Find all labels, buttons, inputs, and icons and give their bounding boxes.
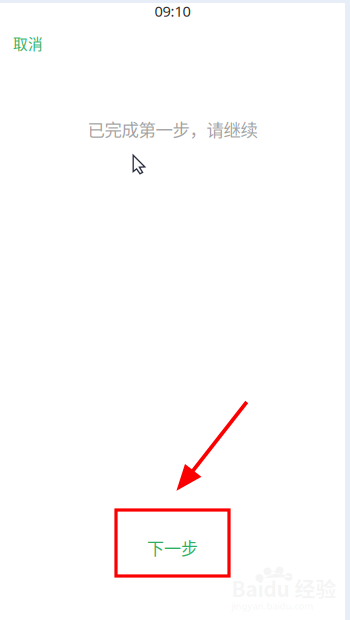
button[interactable]: 取消 [0,28,61,58]
staticText: 09:10 [154,1,190,21]
staticText: 已完成第一步，请继续 [87,116,257,142]
staticText: 取消 [13,32,43,54]
staticText: Baidu 经验 [231,573,336,603]
button[interactable]: 下一步 [116,511,229,581]
staticText: 下一步 [147,535,198,560]
